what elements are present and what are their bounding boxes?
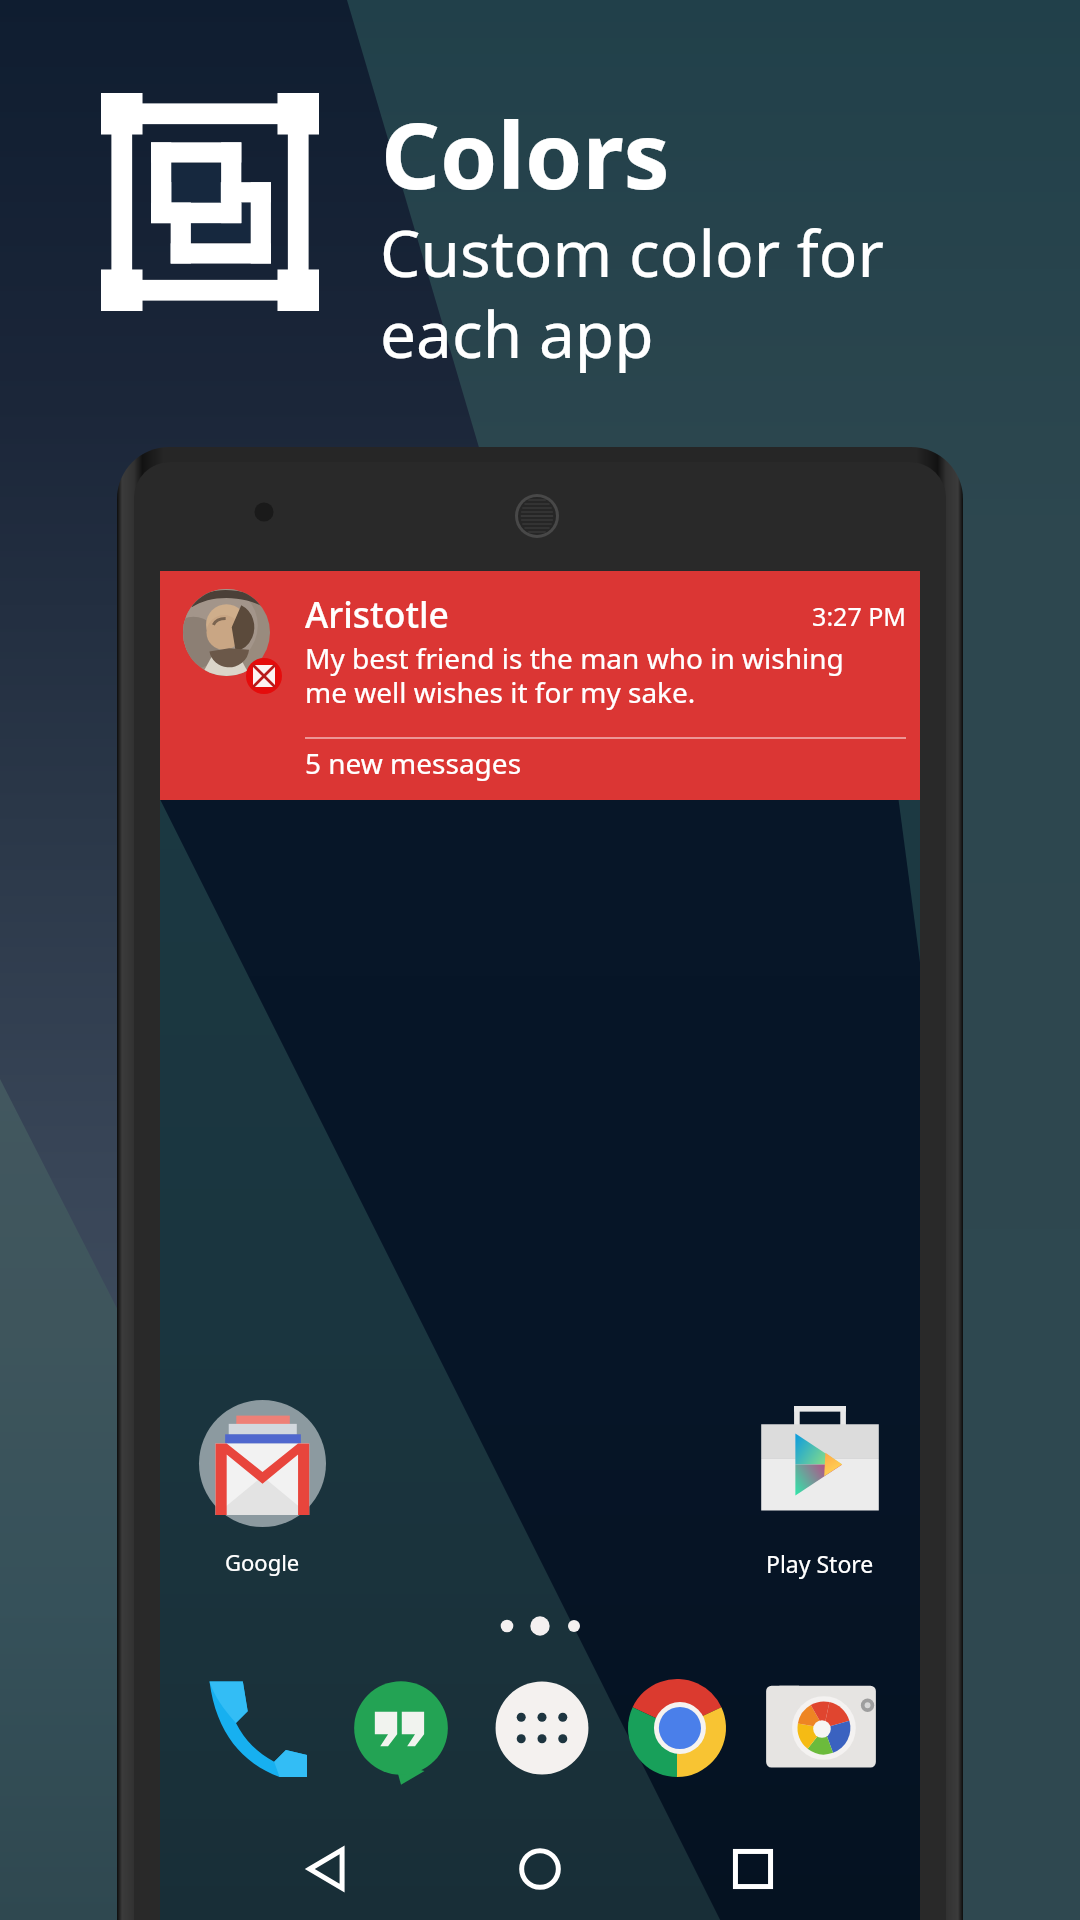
button[interactable]: Play Store [730, 1406, 910, 1579]
button[interactable]: Hangouts [352, 1679, 450, 1777]
button[interactable]: Google [172, 1400, 352, 1577]
button[interactable]: Chrome [628, 1679, 726, 1777]
button[interactable]: Aristotle [160, 571, 920, 800]
button[interactable]: Phone [209, 1679, 307, 1777]
button[interactable]: Home [501, 1830, 579, 1908]
staticText: 5 new messages [305, 744, 522, 782]
staticText: Custom color for each app [380, 209, 884, 377]
button[interactable]: Recents [714, 1830, 792, 1908]
staticText: Play Store [766, 1548, 874, 1579]
staticText: Google [225, 1547, 300, 1577]
staticText: Colors [381, 91, 670, 216]
button[interactable]: All apps [493, 1679, 591, 1777]
staticText: Aristotle [305, 590, 449, 638]
button[interactable]: Camera [772, 1679, 870, 1777]
button[interactable]: Back [291, 1830, 369, 1908]
staticText: 3:27 PM [720, 599, 906, 633]
staticText: My best friend is the man who in wishing… [305, 639, 850, 711]
